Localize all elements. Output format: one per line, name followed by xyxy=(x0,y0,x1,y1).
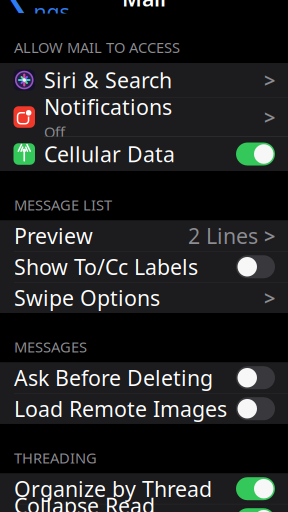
staticText: Notifications xyxy=(44,93,172,121)
staticText: Collapse Read Messages xyxy=(14,491,155,512)
staticText: Cellular Data xyxy=(44,140,175,168)
button[interactable]: Organize by Thread xyxy=(0,473,288,504)
staticText: THREADING xyxy=(14,448,97,467)
button[interactable]: Preview xyxy=(0,220,288,251)
staticText: Ask Before Deleting xyxy=(14,364,213,392)
button[interactable]: Siri & Search xyxy=(0,63,288,97)
button[interactable]: Cellular Data xyxy=(0,137,288,171)
staticText: Off xyxy=(44,122,65,141)
staticText: Swipe Options xyxy=(14,284,160,312)
button[interactable]: ❮ xyxy=(0,0,90,32)
staticText: 2 Lines xyxy=(188,222,258,250)
staticText: > xyxy=(264,67,275,93)
staticText: Siri & Search xyxy=(44,66,172,94)
staticText: Settings xyxy=(33,0,86,26)
staticText: MESSAGES xyxy=(14,337,87,356)
button[interactable]: Collapse Read Messages xyxy=(0,504,288,512)
staticText: > xyxy=(264,284,275,311)
staticText: Show To/Cc Labels xyxy=(14,253,198,281)
staticText: ALLOW MAIL TO ACCESS xyxy=(14,37,180,57)
button[interactable]: Notifications xyxy=(0,97,288,136)
staticText: Mail xyxy=(122,0,166,12)
button[interactable]: Swipe Options xyxy=(0,282,288,313)
button[interactable]: Ask Before Deleting xyxy=(0,362,288,393)
button[interactable]: Load Remote Images xyxy=(0,393,288,424)
staticText: Organize by Thread xyxy=(14,474,212,503)
staticText: > xyxy=(264,222,275,249)
staticText: MESSAGE LIST xyxy=(14,195,112,214)
staticText: Preview xyxy=(14,222,93,250)
button[interactable]: Show To/Cc Labels xyxy=(0,251,288,282)
staticText: ❮ xyxy=(7,0,28,13)
staticText: Load Remote Images xyxy=(14,395,227,423)
staticText: > xyxy=(264,104,275,130)
